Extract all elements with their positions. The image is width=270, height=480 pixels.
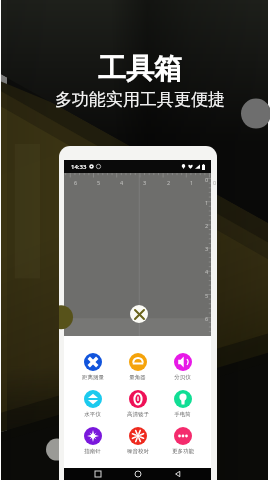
button[interactable]: 分贝仪 [160, 352, 205, 381]
button[interactable]: 指南针 [70, 426, 115, 455]
staticText: 更多功能 [172, 448, 194, 455]
staticText: 指南针 [84, 448, 101, 455]
staticText: 0 [213, 179, 217, 186]
staticText: 2 [205, 222, 209, 229]
staticText: 多功能实用工具更便捷 [55, 89, 225, 110]
staticText: 手电筒 [174, 411, 191, 418]
staticText: 4 [205, 268, 209, 275]
staticText: 0 [205, 176, 209, 183]
button[interactable]: Home [131, 468, 144, 480]
button[interactable]: Close [130, 305, 148, 323]
button[interactable]: 高清镜子 [115, 389, 160, 418]
staticText: 噪音校对 [127, 448, 149, 455]
staticText: 3 [143, 179, 147, 186]
staticText: 6 [205, 315, 209, 322]
staticText: 分贝仪 [174, 374, 191, 381]
button[interactable]: 手电筒 [160, 389, 205, 418]
staticText: 4 [120, 179, 124, 186]
staticText: 工具箱 [98, 51, 182, 86]
button[interactable]: 水平仪 [70, 389, 115, 418]
button[interactable]: 量角器 [115, 352, 160, 381]
staticText: 1 [205, 199, 209, 206]
staticText: 距离测量 [82, 374, 104, 381]
staticText: 水平仪 [84, 411, 101, 418]
staticText: 2 [167, 179, 171, 186]
button[interactable]: 更多功能 [160, 426, 205, 455]
button[interactable]: Back [171, 468, 184, 480]
staticText: 1 [190, 179, 194, 186]
staticText: 5 [97, 179, 101, 186]
button[interactable]: 噪音校对 [115, 426, 160, 455]
staticText: 14:33 [71, 163, 87, 171]
staticText: 量角器 [129, 374, 146, 381]
staticText: 6 [74, 179, 78, 186]
staticText: 高清镜子 [127, 411, 149, 418]
button[interactable]: 距离测量 [70, 352, 115, 381]
staticText: 3 [205, 245, 209, 252]
button[interactable]: Recents [91, 468, 104, 480]
staticText: 5 [205, 292, 209, 299]
